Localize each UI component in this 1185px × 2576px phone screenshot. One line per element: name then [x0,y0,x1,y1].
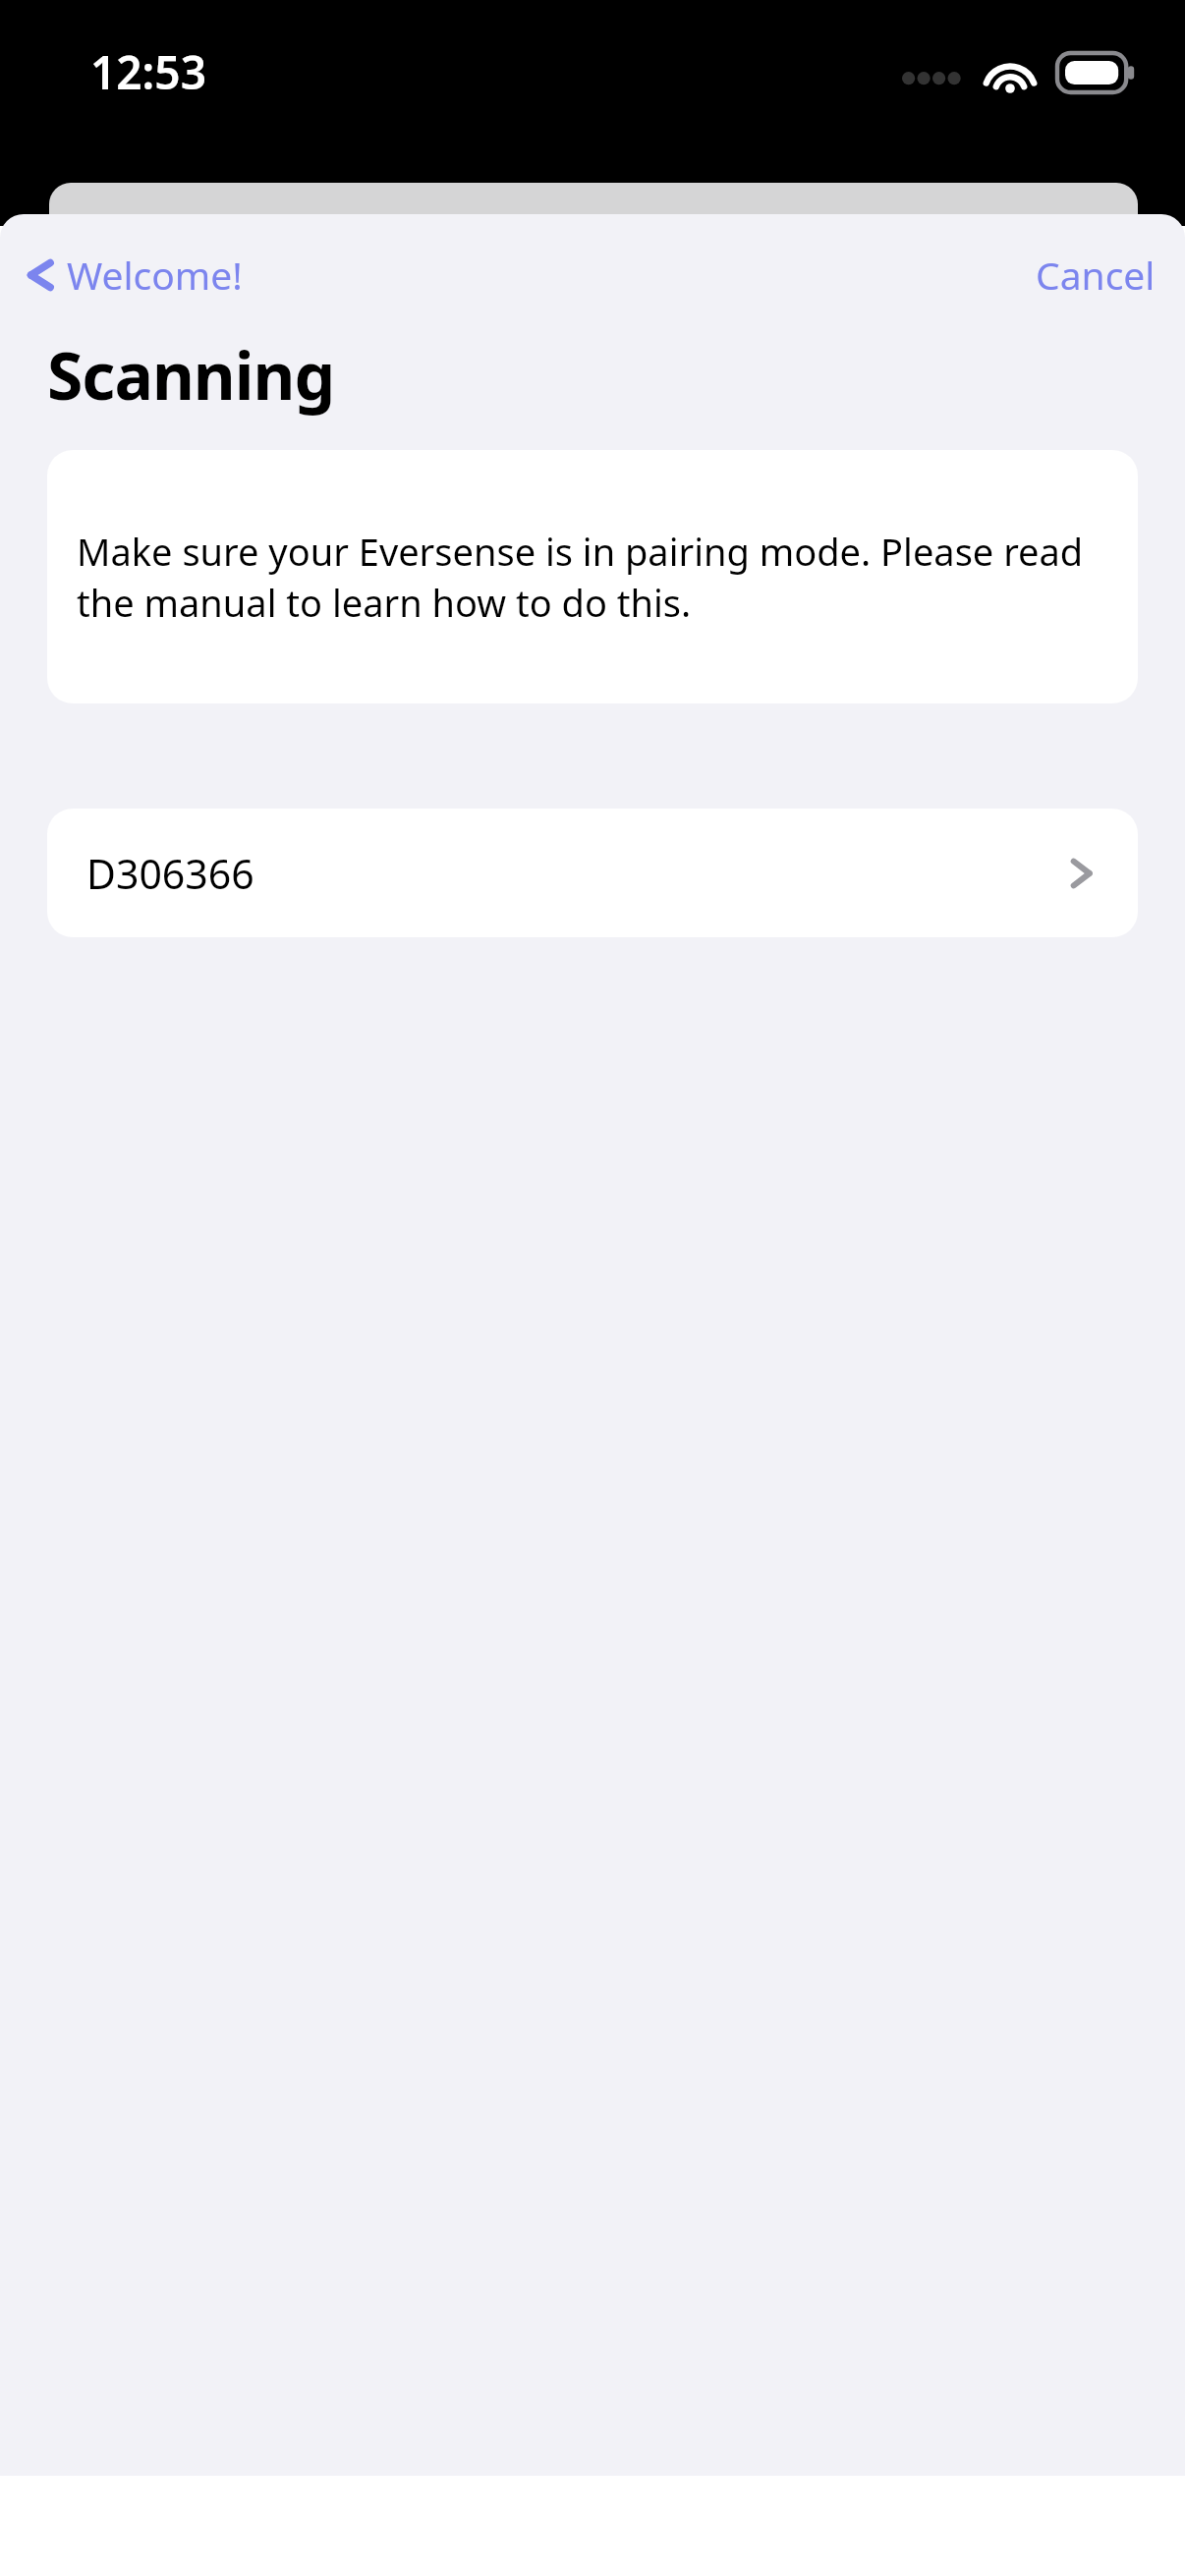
staticText: Welcome! [67,249,243,301]
staticText: Scanning [47,330,335,419]
staticText: Make sure your Eversense is in pairing m… [77,526,1104,628]
staticText: Cancel [1036,249,1156,301]
staticText: 12:53 [90,41,206,103]
other: Open device details [1069,852,1095,895]
button[interactable]: Welcome! [18,239,249,310]
button[interactable]: D306366 [47,809,1138,937]
button[interactable]: Cancel [1028,239,1163,310]
staticText: D306366 [86,846,254,901]
